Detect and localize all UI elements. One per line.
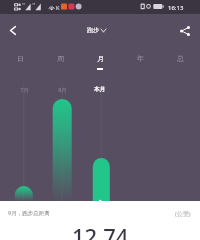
button[interactable]: 跑步 [87, 26, 106, 34]
staticText: 月 [97, 54, 104, 63]
button[interactable]: 月 [80, 45, 120, 71]
staticText: 12.74 [72, 221, 129, 240]
staticText: 跑步 [87, 26, 99, 34]
button[interactable]: 总 [160, 45, 200, 71]
button[interactable]: 年 [120, 45, 160, 71]
staticText: 总 [177, 54, 184, 63]
button[interactable]: 日 [0, 45, 40, 71]
staticText: 年 [137, 54, 144, 63]
staticText: 本月 [94, 86, 105, 93]
staticText: 日 [17, 54, 24, 63]
staticText: (公里) [175, 210, 191, 218]
staticText: 8月 [58, 86, 67, 94]
staticText: 7月 [20, 86, 29, 94]
button[interactable]: Share [172, 14, 200, 45]
button[interactable]: 周 [40, 45, 80, 71]
staticText: 16:13 [168, 4, 184, 12]
staticText: 9月，跑步总距离 [8, 209, 50, 217]
button[interactable]: Back [0, 14, 26, 45]
staticText: K [56, 4, 60, 11]
staticText: 周 [57, 54, 64, 63]
